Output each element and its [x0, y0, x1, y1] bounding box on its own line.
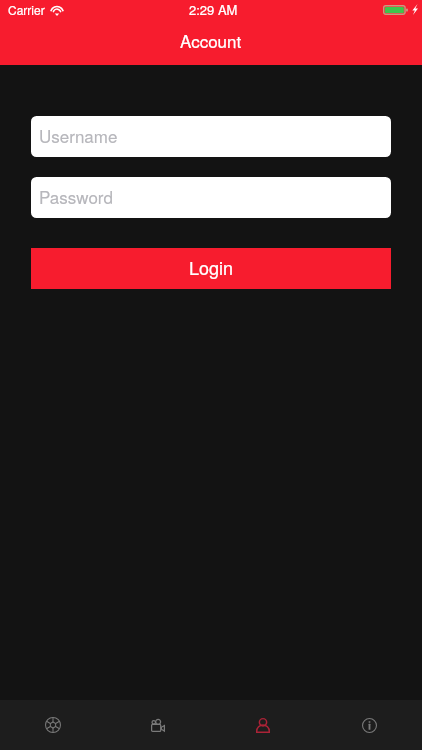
button[interactable]: Login: [31, 248, 391, 289]
staticText: Username: [39, 123, 118, 147]
staticText: Password: [39, 184, 113, 208]
button[interactable]: Account: [210, 700, 316, 750]
staticText: Account: [180, 28, 242, 52]
staticText: Carrier: [8, 1, 45, 18]
staticText: Login: [189, 254, 234, 280]
staticText: 2:29 AM: [189, 0, 238, 19]
button[interactable]: Info: [316, 700, 422, 750]
button[interactable]: Username: [31, 116, 391, 157]
button[interactable]: Matches: [0, 700, 105, 750]
button[interactable]: Password: [31, 177, 391, 218]
button[interactable]: Videos: [105, 700, 210, 750]
